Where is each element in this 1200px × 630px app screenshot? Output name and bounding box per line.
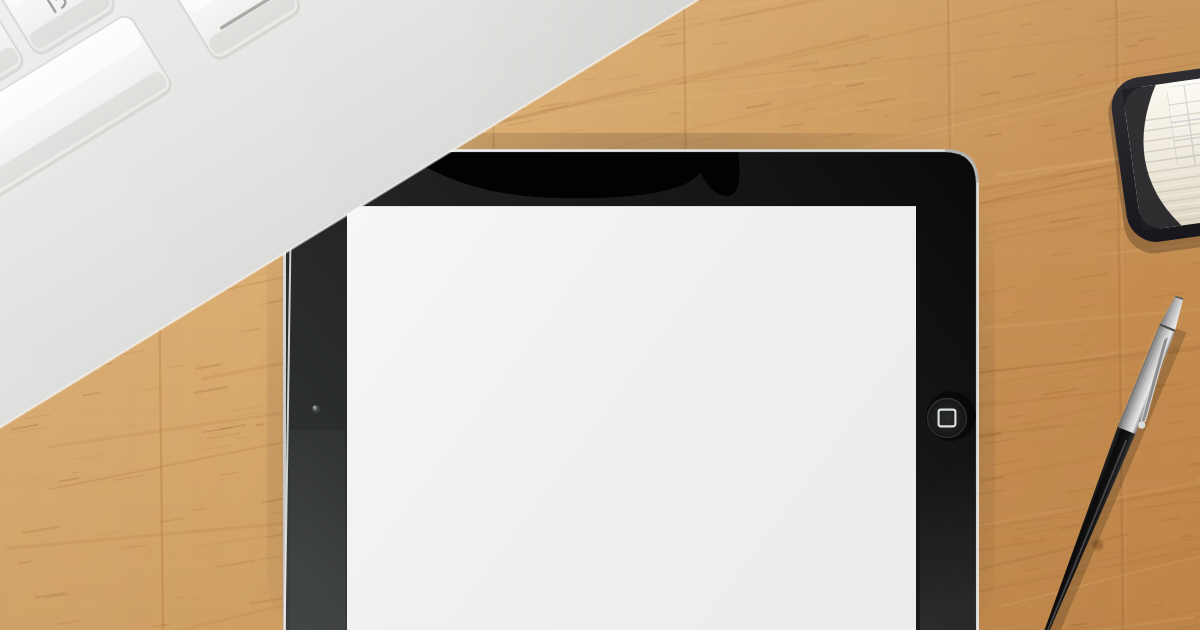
button[interactable]: Tablet with blank screen on a wooden des…	[0, 0, 1200, 630]
